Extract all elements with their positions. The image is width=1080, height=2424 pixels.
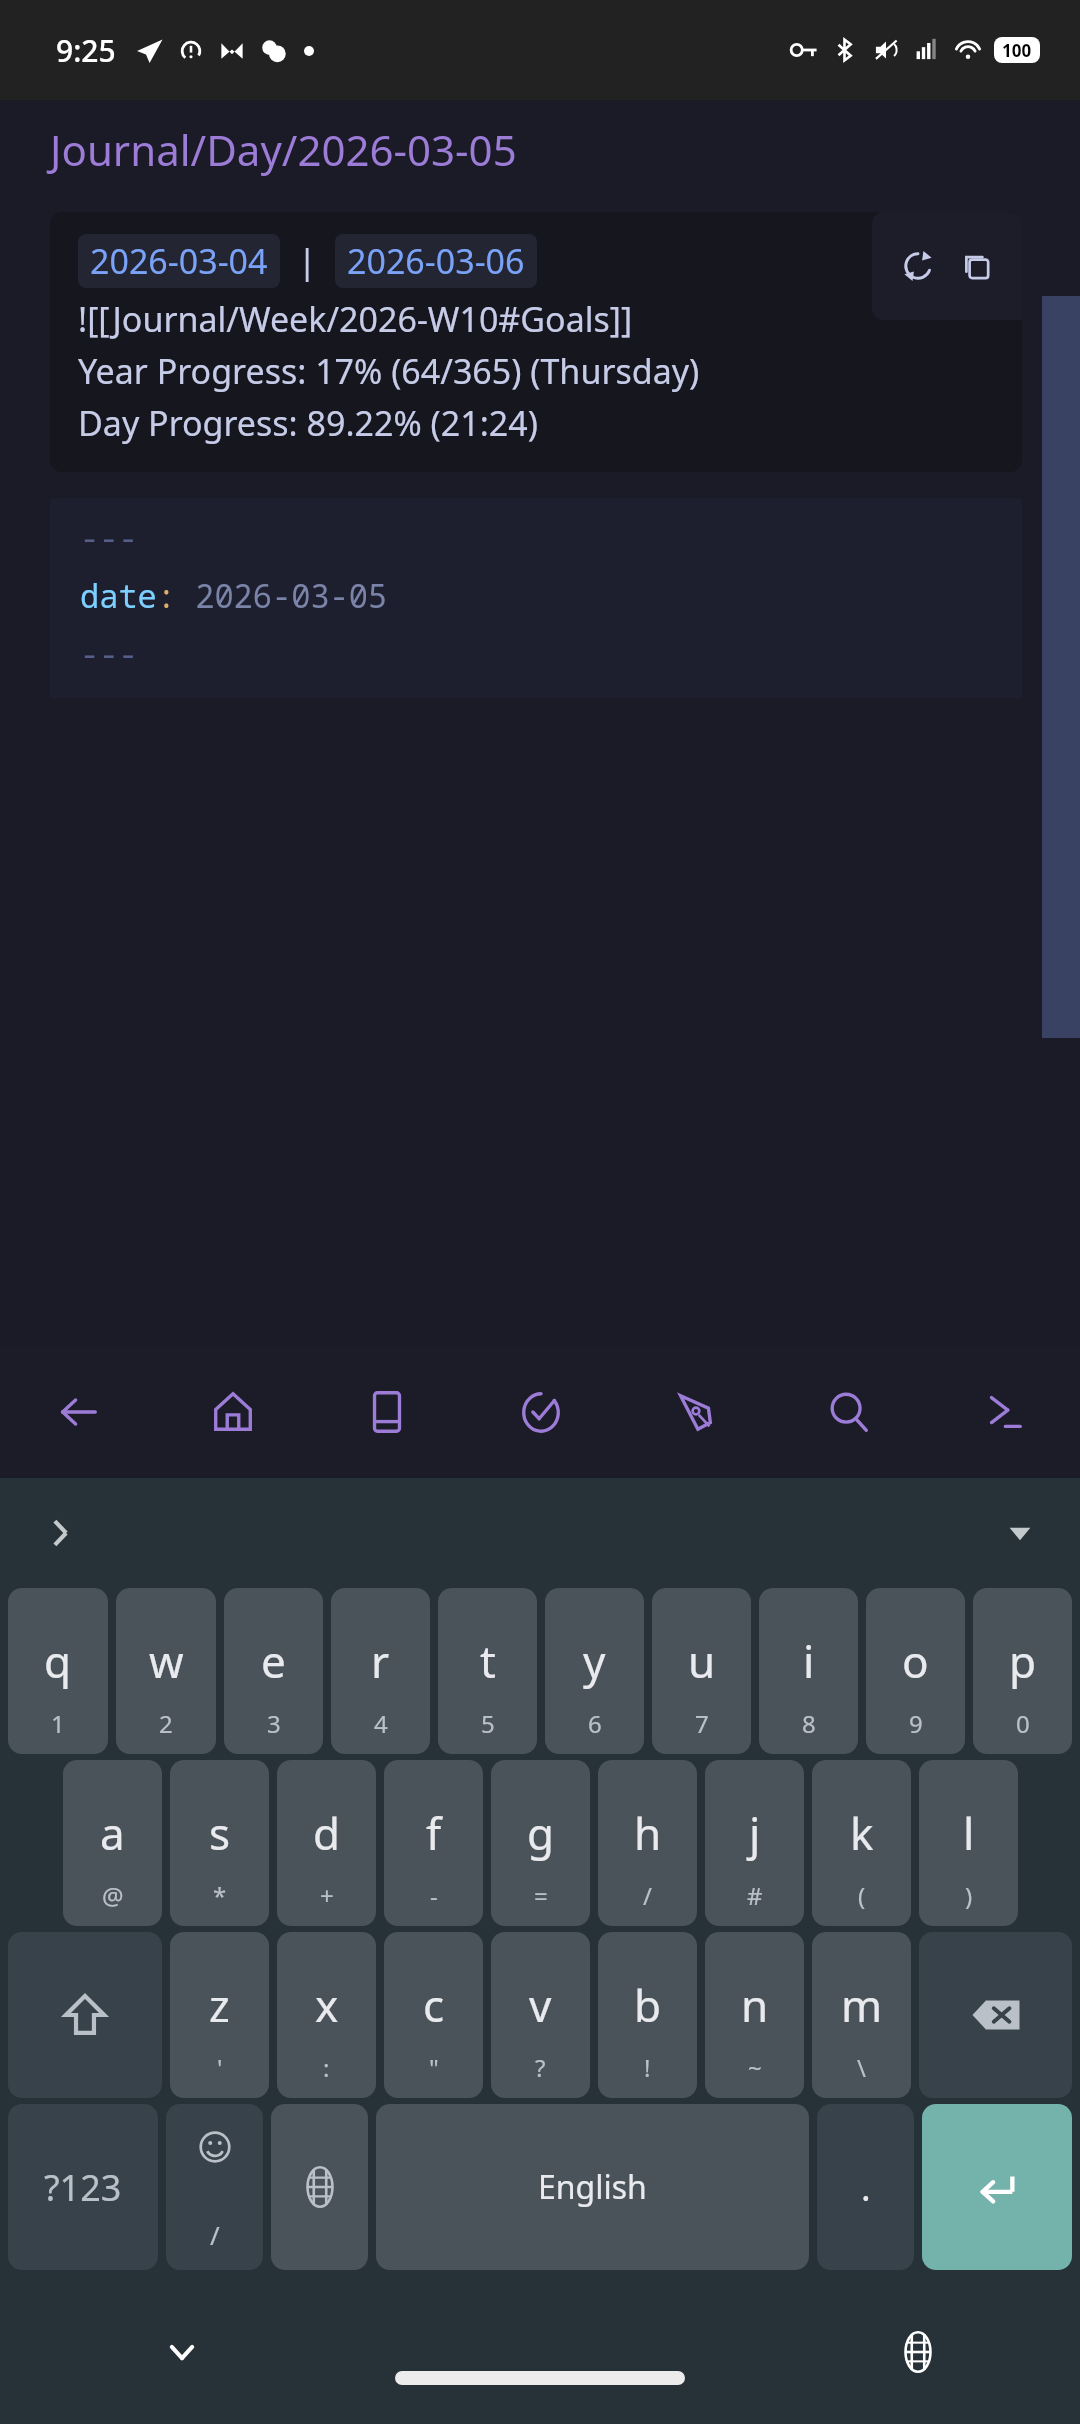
staticText: u (688, 1631, 716, 1691)
button[interactable]: Enter (922, 2104, 1072, 2270)
button[interactable]: i (759, 1588, 858, 1754)
button[interactable]: Shift (8, 1932, 162, 2098)
staticText: --- (80, 516, 138, 560)
staticText: o (902, 1631, 929, 1691)
button[interactable]: d (277, 1760, 376, 1926)
button[interactable]: n (705, 1932, 804, 2098)
staticText: p (1009, 1631, 1037, 1691)
staticText: b (634, 1975, 662, 2035)
button[interactable]: Terminal (926, 1346, 1080, 1478)
staticText: 1 (51, 1707, 65, 1740)
button[interactable]: r (331, 1588, 430, 1754)
button[interactable]: t (438, 1588, 537, 1754)
button[interactable]: Switch input (886, 2320, 950, 2384)
staticText: v (529, 1975, 552, 2035)
staticText: date: 2026-03-05 (80, 574, 388, 618)
staticText: . (861, 2163, 871, 2212)
button[interactable]: Backspace (919, 1932, 1072, 2098)
button[interactable]: b (598, 1932, 697, 2098)
button[interactable]: Search (772, 1346, 926, 1478)
staticText: ' (217, 2051, 223, 2084)
button[interactable]: s (170, 1760, 269, 1926)
button[interactable]: Change language (271, 2104, 368, 2270)
button[interactable]: 2026-03-04 (78, 234, 280, 288)
button[interactable]: v (491, 1932, 590, 2098)
button[interactable]: f (384, 1760, 483, 1926)
staticText: x (315, 1975, 339, 2035)
button[interactable]: ?123 (8, 2104, 158, 2270)
button[interactable]: Back (0, 1346, 155, 1478)
button[interactable]: Refresh (896, 244, 940, 288)
button[interactable]: Home (155, 1346, 310, 1478)
staticText: f (426, 1803, 442, 1863)
staticText: 7 (695, 1707, 709, 1740)
button[interactable]: English (376, 2104, 809, 2270)
button[interactable]: 2026-03-06 (335, 234, 537, 288)
button[interactable]: u (652, 1588, 751, 1754)
staticText: | (280, 238, 335, 284)
staticText: z (209, 1975, 230, 2035)
button[interactable]: l (919, 1760, 1018, 1926)
staticText: # (747, 1879, 763, 1912)
button[interactable]: Copy (954, 244, 998, 288)
staticText: " (429, 2051, 439, 2084)
staticText: i (803, 1631, 815, 1691)
staticText: English (538, 2165, 647, 2209)
button[interactable]: p (973, 1588, 1072, 1754)
staticText: 6 (588, 1707, 602, 1740)
button[interactable]: More (990, 1503, 1050, 1563)
staticText: c (423, 1975, 445, 2035)
staticText: 2026-03-06 (347, 238, 525, 284)
staticText: 5 (481, 1707, 495, 1740)
staticText: 3 (267, 1707, 281, 1740)
staticText: s (209, 1803, 231, 1863)
staticText: 2 (159, 1707, 173, 1740)
staticText: 0 (1016, 1707, 1030, 1740)
staticText: ~ (748, 2051, 762, 2084)
button[interactable]: x (277, 1932, 376, 2098)
staticText: g (527, 1803, 555, 1863)
staticText: + (320, 1879, 334, 1912)
staticText: : (323, 2051, 330, 2084)
button[interactable]: h (598, 1760, 697, 1926)
staticText: Day Progress: 89.22% (21:24) (78, 400, 538, 446)
staticText: w (149, 1631, 184, 1691)
staticText: 9 (909, 1707, 923, 1740)
button[interactable]: q (8, 1588, 108, 1754)
button[interactable]: g (491, 1760, 590, 1926)
button[interactable]: k (812, 1760, 911, 1926)
staticText: 4 (374, 1707, 388, 1740)
button[interactable]: Draw (618, 1346, 772, 1478)
button[interactable]: e (224, 1588, 323, 1754)
button[interactable]: m (812, 1932, 911, 2098)
staticText: ?123 (44, 2163, 122, 2212)
staticText: - (430, 1879, 438, 1912)
button[interactable]: Notebook (310, 1346, 464, 1478)
button[interactable]: c (384, 1932, 483, 2098)
button[interactable]: y (545, 1588, 644, 1754)
staticText: / (210, 2217, 220, 2252)
button[interactable]: o (866, 1588, 965, 1754)
staticText: ? (535, 2051, 546, 2084)
button[interactable]: a (63, 1760, 162, 1926)
button[interactable]: j (705, 1760, 804, 1926)
button[interactable]: . (817, 2104, 914, 2270)
button[interactable]: Tasks (464, 1346, 618, 1478)
staticText: 100 (1002, 39, 1032, 62)
staticText: q (44, 1631, 72, 1691)
staticText: = (534, 1879, 548, 1912)
button[interactable]: w (116, 1588, 216, 1754)
staticText: l (963, 1803, 975, 1863)
staticText: e (261, 1631, 286, 1691)
staticText: Year Progress: 17% (64/365) (Thursday) (78, 348, 700, 394)
button[interactable]: Hide keyboard (150, 2320, 214, 2384)
button[interactable]: Emoji (166, 2104, 263, 2270)
staticText: 8 (802, 1707, 816, 1740)
button[interactable]: Expand (30, 1503, 90, 1563)
staticText: / (643, 1879, 652, 1912)
staticText: h (634, 1803, 662, 1863)
staticText: k (850, 1803, 874, 1863)
button[interactable]: z (170, 1932, 269, 2098)
staticText: ![[Journal/Week/2026-W10#Goals]] (78, 296, 633, 342)
staticText: a (100, 1803, 125, 1863)
